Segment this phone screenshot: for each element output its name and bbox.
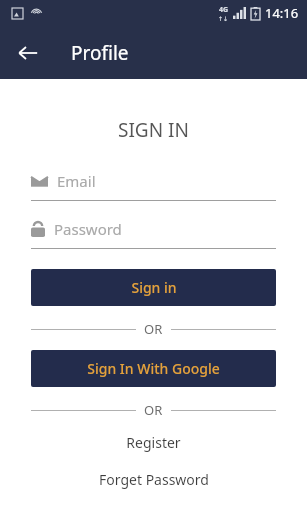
staticText: Profile: [71, 40, 129, 66]
staticText: 14:16: [265, 4, 299, 22]
staticText: Sign In With Google: [87, 359, 220, 378]
button[interactable]: Password: [31, 217, 276, 249]
staticText: 4G: [219, 5, 229, 15]
button[interactable]: Sign In With Google: [31, 350, 276, 387]
staticText: Email: [57, 171, 96, 191]
button[interactable]: Register: [31, 433, 276, 452]
staticText: Register: [126, 433, 181, 452]
button[interactable]: Back: [8, 33, 48, 73]
staticText: Password: [54, 219, 122, 239]
staticText: OR: [144, 401, 163, 419]
staticText: SIGN IN: [118, 117, 189, 143]
button[interactable]: Email: [31, 169, 276, 201]
staticText: Forget Password: [99, 470, 209, 489]
button[interactable]: Sign in: [31, 269, 276, 306]
staticText: Sign in: [131, 278, 177, 297]
staticText: OR: [144, 320, 163, 338]
button[interactable]: Forget Password: [31, 470, 276, 489]
staticText: ↑↓: [218, 15, 229, 22]
